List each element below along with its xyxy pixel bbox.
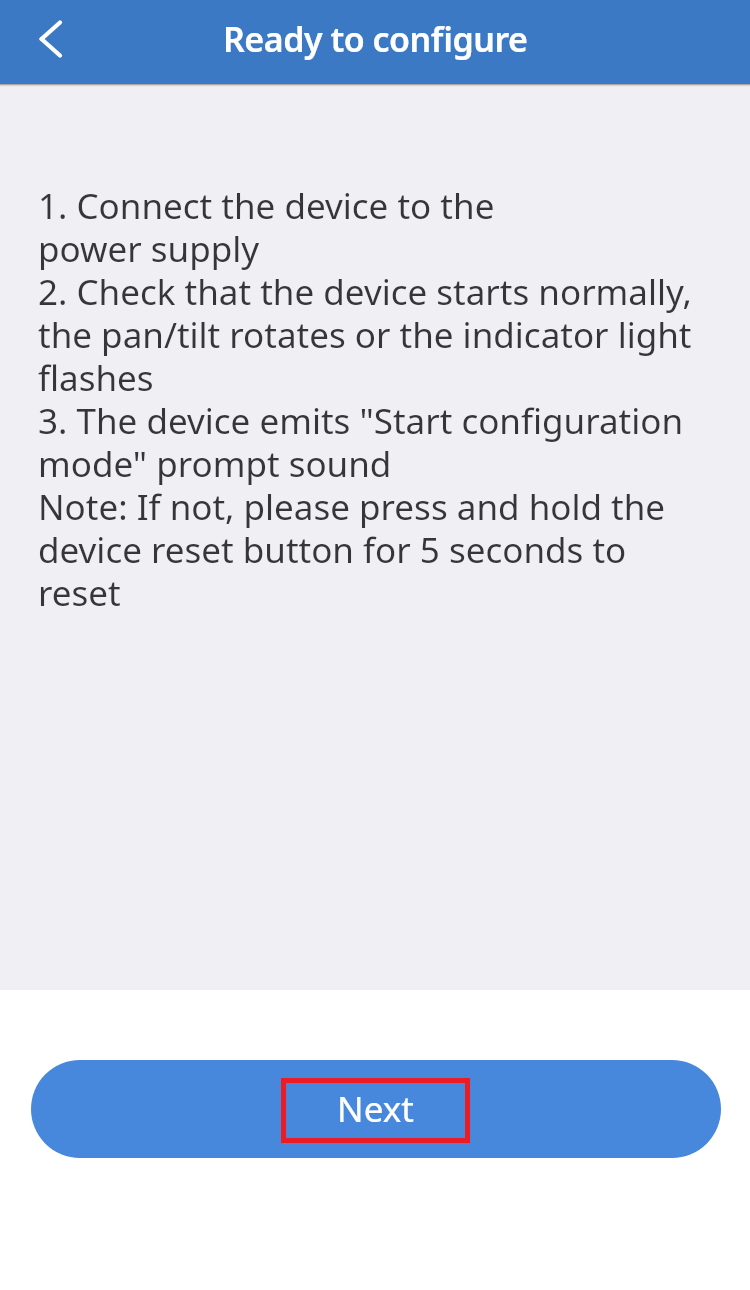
- staticText: 1. Connect the device to the power suppl…: [38, 182, 692, 617]
- button[interactable]: Next: [31, 1060, 721, 1158]
- staticText: Next: [337, 1085, 414, 1133]
- button[interactable]: Back: [0, 0, 84, 84]
- staticText: Ready to configure: [223, 16, 528, 62]
